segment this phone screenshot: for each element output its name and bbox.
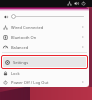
button[interactable]: Balanced (1, 42, 88, 52)
button[interactable]: Wired Connected (1, 22, 88, 32)
button[interactable]: Bluetooth On (1, 32, 88, 42)
button[interactable]: Volume (74, 1, 79, 6)
staticText: Balanced (11, 45, 29, 50)
staticText: Wired Connected (11, 25, 44, 30)
button[interactable]: Power (81, 1, 86, 6)
button[interactable]: Settings (3, 57, 86, 67)
staticText: Power Off / Log Out (11, 80, 49, 85)
staticText: Settings (13, 60, 29, 65)
button[interactable]: Lock (1, 69, 88, 77)
button[interactable]: Power Off / Log Out (1, 77, 88, 87)
button[interactable]: Network (67, 1, 72, 6)
staticText: Lock (11, 71, 20, 76)
staticText: Bluetooth On (11, 35, 37, 40)
